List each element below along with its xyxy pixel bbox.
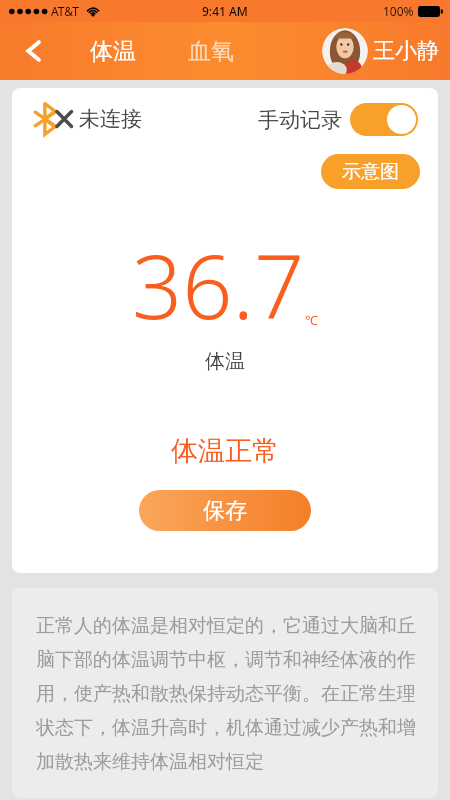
button[interactable]: Back [14, 31, 54, 71]
staticText: 体温正常 [171, 434, 279, 468]
button[interactable]: 示意图 [321, 154, 420, 189]
staticText: 体温 [90, 37, 136, 66]
button[interactable]: Manual record toggle [350, 103, 418, 136]
staticText: 体温 [205, 349, 245, 374]
staticText: 示意图 [342, 160, 399, 184]
button[interactable]: 王小静 [319, 25, 442, 77]
staticText: 正常人的体温是相对恒定的，它通过大脑和丘脑下部的体温调节中枢，调节和神经体液的作… [36, 614, 420, 774]
staticText: 血氧 [188, 37, 234, 66]
staticText: 未连接 [79, 106, 142, 132]
staticText: 王小静 [373, 37, 439, 65]
button[interactable]: 血氧 [182, 32, 240, 71]
button[interactable]: 未连接 [32, 102, 142, 136]
staticText: 100% [383, 3, 414, 19]
staticText: 36.7 [132, 225, 305, 345]
button[interactable]: 保存 [139, 490, 311, 531]
staticText: 保存 [203, 497, 247, 525]
button[interactable]: 体温 [84, 32, 142, 71]
staticText: 手动记录 [258, 107, 342, 133]
button[interactable]: 手动记录 [258, 103, 418, 136]
staticText: 9:41 AM [202, 3, 248, 19]
staticText: ℃ [305, 311, 318, 329]
staticText: AT&T [51, 3, 79, 19]
